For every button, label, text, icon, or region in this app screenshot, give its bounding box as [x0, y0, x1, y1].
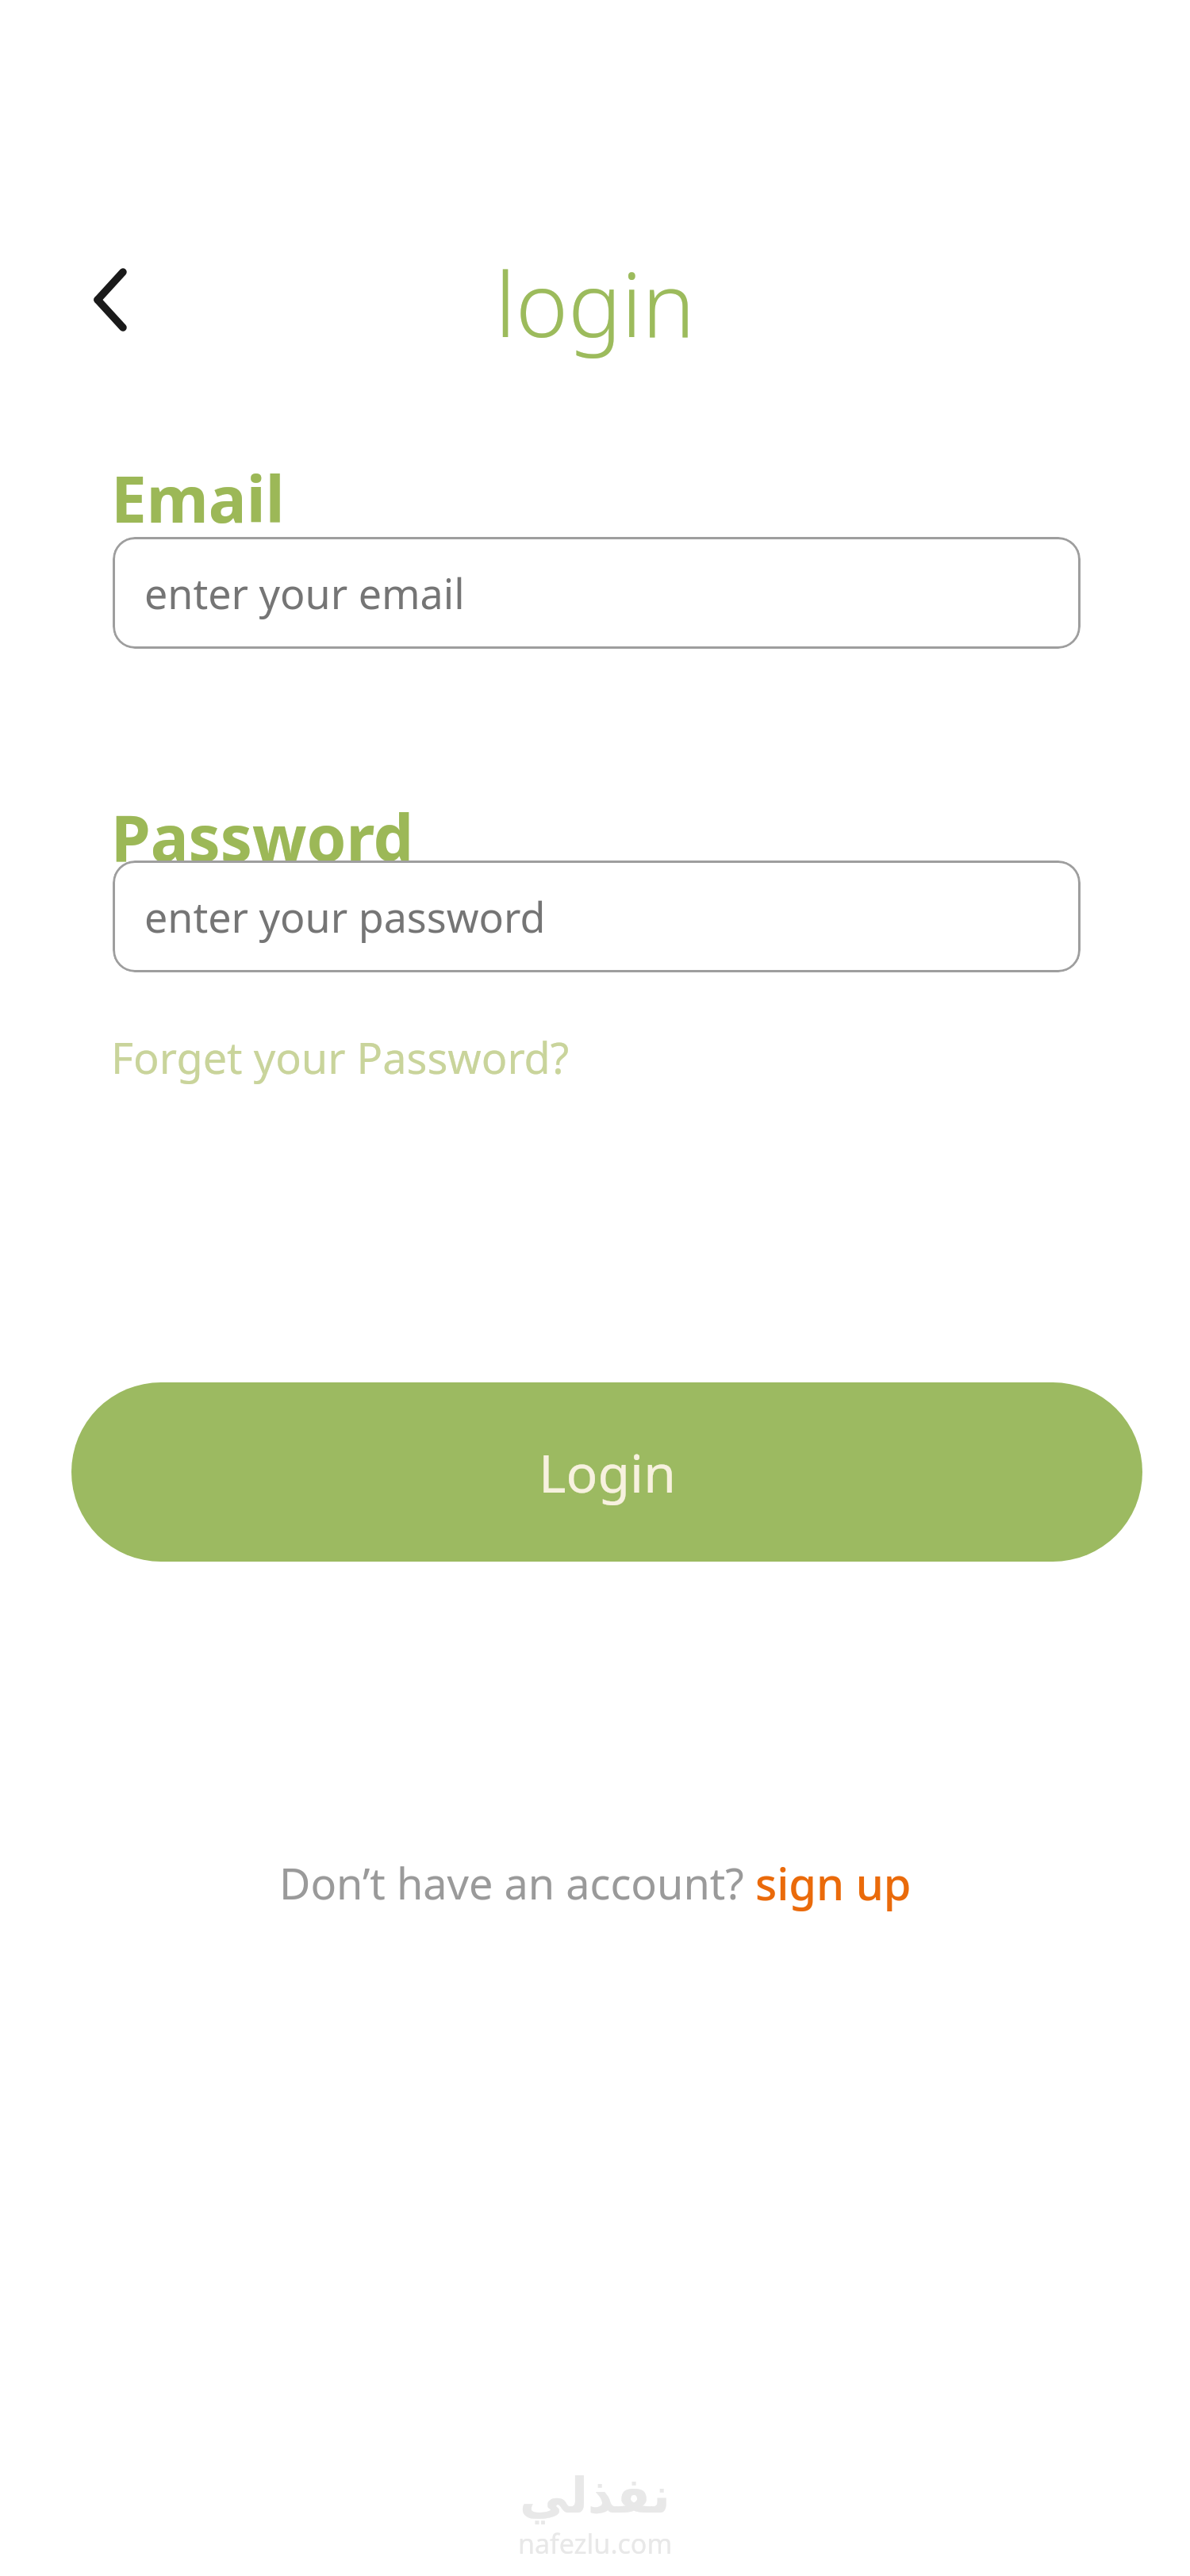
button[interactable]: enter your password — [113, 861, 1081, 972]
staticText: login — [495, 242, 695, 363]
staticText: نفذلي — [520, 2467, 670, 2524]
staticText: Forget your Password? — [111, 1028, 570, 1087]
staticText: Password — [111, 793, 414, 880]
staticText: Email — [111, 454, 285, 541]
button[interactable]: Back — [59, 261, 138, 340]
staticText: enter your password — [144, 888, 546, 945]
staticText: sign up — [755, 1853, 912, 1913]
button[interactable]: Login — [71, 1382, 1142, 1562]
button[interactable]: Don’t have an account? — [279, 1853, 912, 1913]
button[interactable]: enter your email — [113, 537, 1081, 649]
staticText: enter your email — [144, 565, 465, 621]
button[interactable]: Forget your Password? — [105, 1023, 576, 1091]
staticText: Login — [539, 1436, 676, 1508]
staticText: nafezlu.com — [518, 2525, 673, 2562]
staticText: Don’t have an account? — [279, 1853, 755, 1912]
